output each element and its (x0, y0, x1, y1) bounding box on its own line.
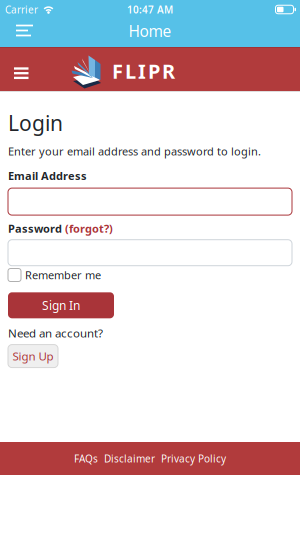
button[interactable]: Remember me (8, 268, 101, 282)
button[interactable]: FAQs (74, 452, 98, 465)
button[interactable]: Menu (0, 47, 39, 91)
button[interactable]: Menu (0, 21, 41, 47)
staticText: Email Address (8, 168, 87, 183)
staticText: Home (128, 21, 171, 41)
button[interactable]: Sign In (8, 292, 114, 318)
staticText: Sign In (42, 297, 80, 313)
staticText: F L I P R (112, 58, 175, 84)
button[interactable]: Sign Up (8, 345, 58, 368)
staticText: Carrier (5, 3, 38, 16)
staticText: FAQs (74, 452, 98, 465)
button[interactable]: Privacy Policy (161, 452, 226, 465)
staticText: Need an account? (8, 325, 103, 341)
staticText: Disclaimer (104, 452, 155, 465)
staticText: 10:47 AM (127, 3, 173, 16)
staticText: Enter your email address and password to… (8, 144, 261, 158)
staticText: Privacy Policy (161, 452, 226, 465)
staticText: (forgot?) (65, 221, 113, 236)
button[interactable]: (forgot?) (65, 221, 113, 236)
staticText: Remember me (25, 268, 101, 282)
staticText: Sign Up (12, 348, 53, 364)
staticText: Password (8, 221, 62, 236)
button[interactable]: Disclaimer (104, 452, 155, 465)
staticText: Login (8, 109, 63, 137)
